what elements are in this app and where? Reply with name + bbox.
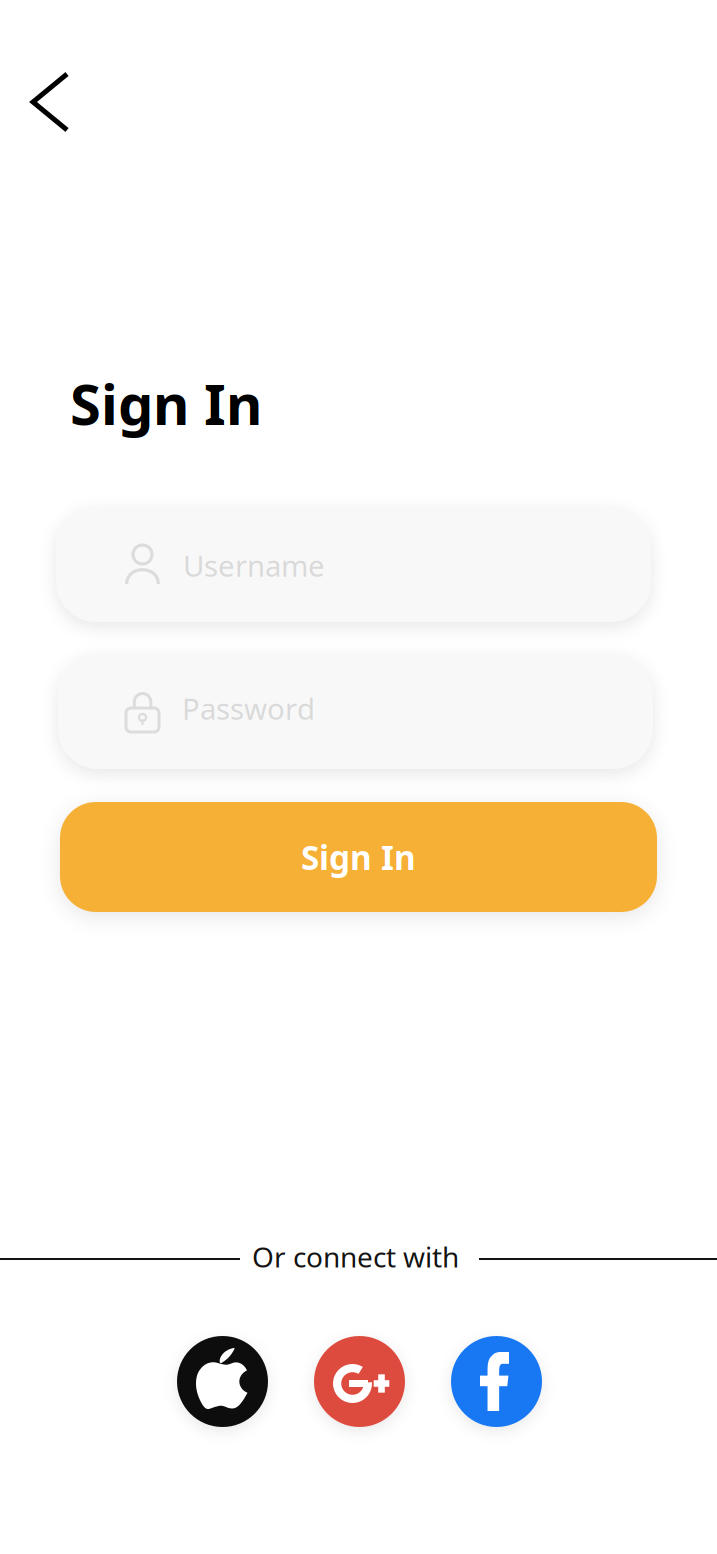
button[interactable]: Back	[0, 53, 96, 149]
staticText: Username	[183, 546, 325, 585]
staticText: Sign In	[301, 835, 416, 879]
staticText: Sign In	[70, 366, 262, 440]
button[interactable]: Sign in with Facebook	[451, 1336, 542, 1427]
button[interactable]: Sign in with Apple	[177, 1336, 268, 1427]
button[interactable]: Sign In	[60, 802, 657, 912]
staticText: Password	[182, 689, 315, 728]
button[interactable]: Sign in with Google	[314, 1336, 405, 1427]
staticText: Or connect with	[252, 1238, 459, 1275]
